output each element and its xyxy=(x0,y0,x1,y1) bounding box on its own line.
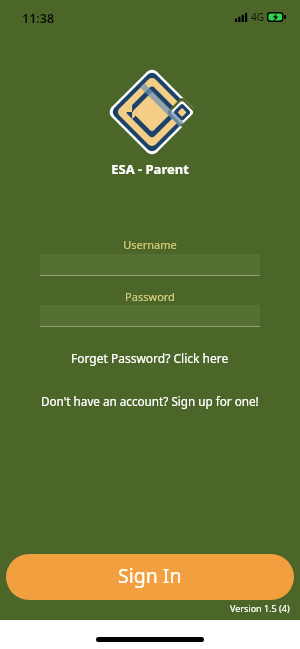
staticText: Username xyxy=(0,237,300,252)
button[interactable]: Forget Password? Click here xyxy=(0,350,300,366)
staticText: Sign In xyxy=(118,562,182,589)
staticText: Forget Password? Click here xyxy=(71,350,229,366)
staticText: Don't have an account? Sign up for one! xyxy=(41,393,259,409)
button[interactable]: Don't have an account? Sign up for one! xyxy=(0,393,300,409)
staticText: ESA - Parent xyxy=(0,160,300,178)
button[interactable]: Sign In xyxy=(6,554,294,600)
staticText: 11:38 xyxy=(22,10,55,27)
staticText: Version 1.5 (4) xyxy=(230,602,290,614)
staticText: Password xyxy=(0,289,300,304)
staticText: 4G xyxy=(251,10,264,24)
